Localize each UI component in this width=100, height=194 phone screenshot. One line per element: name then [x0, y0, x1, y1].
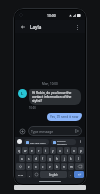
button[interactable]: Shift — [16, 163, 25, 170]
staticText: ?123 — [18, 173, 24, 176]
button[interactable]: a — [19, 155, 25, 162]
button[interactable]: b — [54, 163, 60, 170]
staticText: Mon, 10:00 — [42, 82, 58, 86]
staticText: e — [31, 149, 33, 153]
button[interactable]: f — [40, 155, 46, 162]
button[interactable]: y — [50, 147, 56, 154]
button[interactable]: Period — [68, 171, 73, 178]
staticText: Yes, I'll send it now — [50, 115, 79, 119]
staticText: stlsq.p/backlehi — [57, 139, 74, 145]
button[interactable]: e — [29, 147, 35, 154]
button[interactable]: s — [26, 155, 32, 162]
staticText: l — [78, 157, 79, 161]
button[interactable]: Layla — [30, 24, 73, 30]
button[interactable]: Layla avatar — [18, 89, 27, 98]
button[interactable]: Space — [40, 171, 67, 178]
button[interactable]: Emoji — [33, 171, 39, 178]
staticText: c — [42, 165, 44, 169]
staticText: o — [73, 149, 75, 153]
staticText: g — [49, 157, 51, 161]
button[interactable]: Hi Robin, do you know the contact inform… — [29, 89, 81, 105]
staticText: y — [52, 149, 54, 153]
button[interactable]: x — [33, 163, 39, 170]
staticText: h — [56, 157, 58, 161]
button[interactable]: o — [71, 147, 77, 154]
button[interactable]: More suggestions — [78, 139, 83, 144]
staticText: , — [29, 173, 30, 177]
staticText: u — [59, 149, 61, 153]
staticText: English — [49, 173, 58, 177]
staticText: q — [18, 149, 20, 153]
button[interactable]: h — [54, 155, 60, 162]
staticText: j — [64, 157, 65, 161]
button[interactable]: Yes, I'll send it now — [47, 113, 82, 121]
staticText: w — [24, 149, 27, 153]
button[interactable]: Backspace — [75, 163, 84, 170]
button[interactable]: v — [47, 163, 53, 170]
staticText: t — [45, 149, 47, 153]
button[interactable]: p — [78, 147, 84, 154]
button[interactable]: j — [61, 155, 67, 162]
staticText: v — [49, 165, 51, 169]
button[interactable]: self-489-0945 — [24, 139, 49, 145]
button[interactable]: Assistant — [17, 139, 22, 144]
staticText: s — [28, 157, 30, 161]
staticText: i — [67, 149, 68, 153]
staticText: Hi Robin, do you know the contact inform… — [32, 91, 78, 103]
staticText: d — [35, 157, 37, 161]
button[interactable]: l — [75, 155, 81, 162]
button[interactable]: Comma — [27, 171, 32, 178]
button[interactable]: r — [36, 147, 42, 154]
staticText: n — [63, 165, 65, 169]
button[interactable]: w — [22, 147, 28, 154]
button[interactable]: Enter — [74, 171, 84, 178]
button[interactable]: More options — [73, 23, 81, 31]
staticText: 10:00 — [47, 13, 56, 18]
staticText: . — [70, 173, 71, 177]
staticText: z — [28, 165, 30, 169]
button[interactable]: c — [40, 163, 46, 170]
staticText: p — [80, 149, 82, 153]
button[interactable]: stlsq.p/backlehi — [51, 139, 76, 145]
button[interactable]: i — [64, 147, 70, 154]
staticText: L — [21, 91, 24, 97]
staticText: Type message — [31, 129, 75, 133]
staticText: r — [38, 149, 40, 153]
button[interactable]: Back — [19, 23, 27, 31]
button[interactable]: Symbols — [16, 171, 26, 178]
button[interactable]: d — [33, 155, 39, 162]
button[interactable]: Add attachment — [18, 127, 26, 135]
staticText: a — [21, 157, 23, 161]
button[interactable]: k — [68, 155, 74, 162]
button[interactable]: u — [57, 147, 63, 154]
other: Send — [75, 129, 79, 133]
staticText: x — [35, 165, 37, 169]
staticText: k — [70, 157, 72, 161]
button[interactable]: z — [26, 163, 32, 170]
staticText: m — [70, 165, 73, 169]
button[interactable]: Type message — [28, 126, 82, 136]
button[interactable]: q — [16, 147, 21, 154]
staticText: self-489-0945 — [30, 141, 47, 144]
staticText: f — [42, 157, 44, 161]
button[interactable]: t — [43, 147, 49, 154]
button[interactable]: g — [47, 155, 53, 162]
button[interactable]: m — [68, 163, 74, 170]
staticText: 10:00 — [29, 106, 36, 110]
button[interactable]: n — [61, 163, 67, 170]
staticText: b — [56, 165, 58, 169]
